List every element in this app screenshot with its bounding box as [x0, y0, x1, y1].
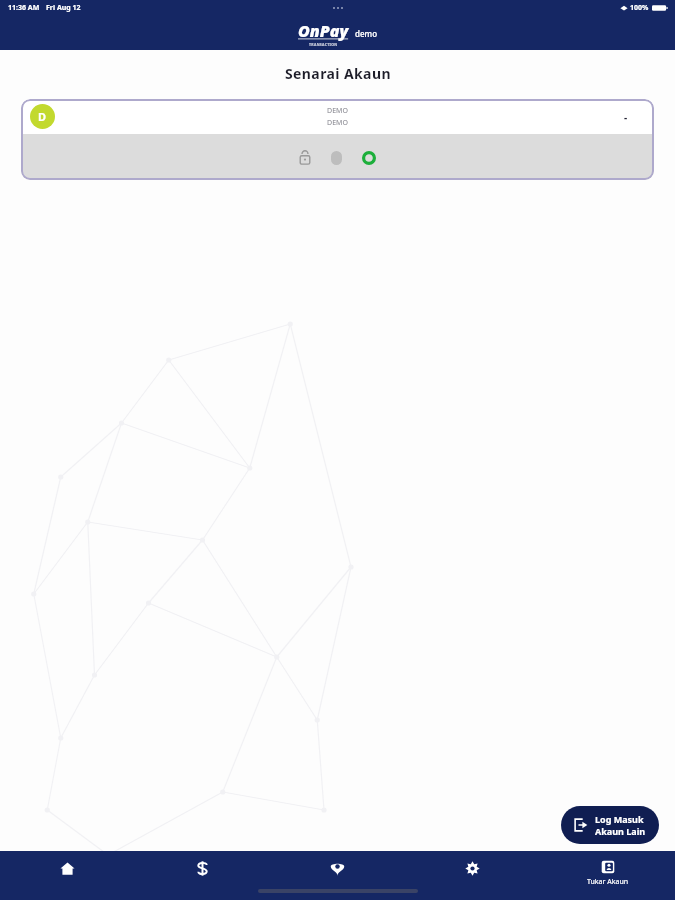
- staticText: Akaun Lain: [595, 825, 646, 837]
- staticText: DEMO: [327, 106, 348, 116]
- staticText: 100%: [630, 3, 649, 13]
- button[interactable]: Payments: [135, 851, 270, 900]
- staticText: -: [624, 110, 628, 124]
- button[interactable]: Home: [0, 851, 135, 900]
- button[interactable]: Settings: [405, 851, 540, 900]
- staticText: D: [38, 109, 47, 124]
- button[interactable]: Locations: [270, 851, 405, 900]
- button[interactable]: Tukar Akaun: [540, 851, 675, 900]
- staticText: Tukar Akaun: [587, 877, 629, 887]
- staticText: Senarai Akaun: [285, 64, 391, 83]
- button[interactable]: Log Masuk: [561, 806, 659, 844]
- staticText: TRANSACTION: [309, 42, 338, 47]
- staticText: demo: [355, 28, 378, 39]
- staticText: DEMO: [327, 118, 348, 128]
- staticText: OnPay: [298, 20, 349, 42]
- button[interactable]: D: [21, 99, 654, 180]
- staticText: Log Masuk: [595, 813, 644, 825]
- staticText: Fri Aug 12: [46, 3, 81, 13]
- staticText: 11:36 AM: [8, 3, 40, 13]
